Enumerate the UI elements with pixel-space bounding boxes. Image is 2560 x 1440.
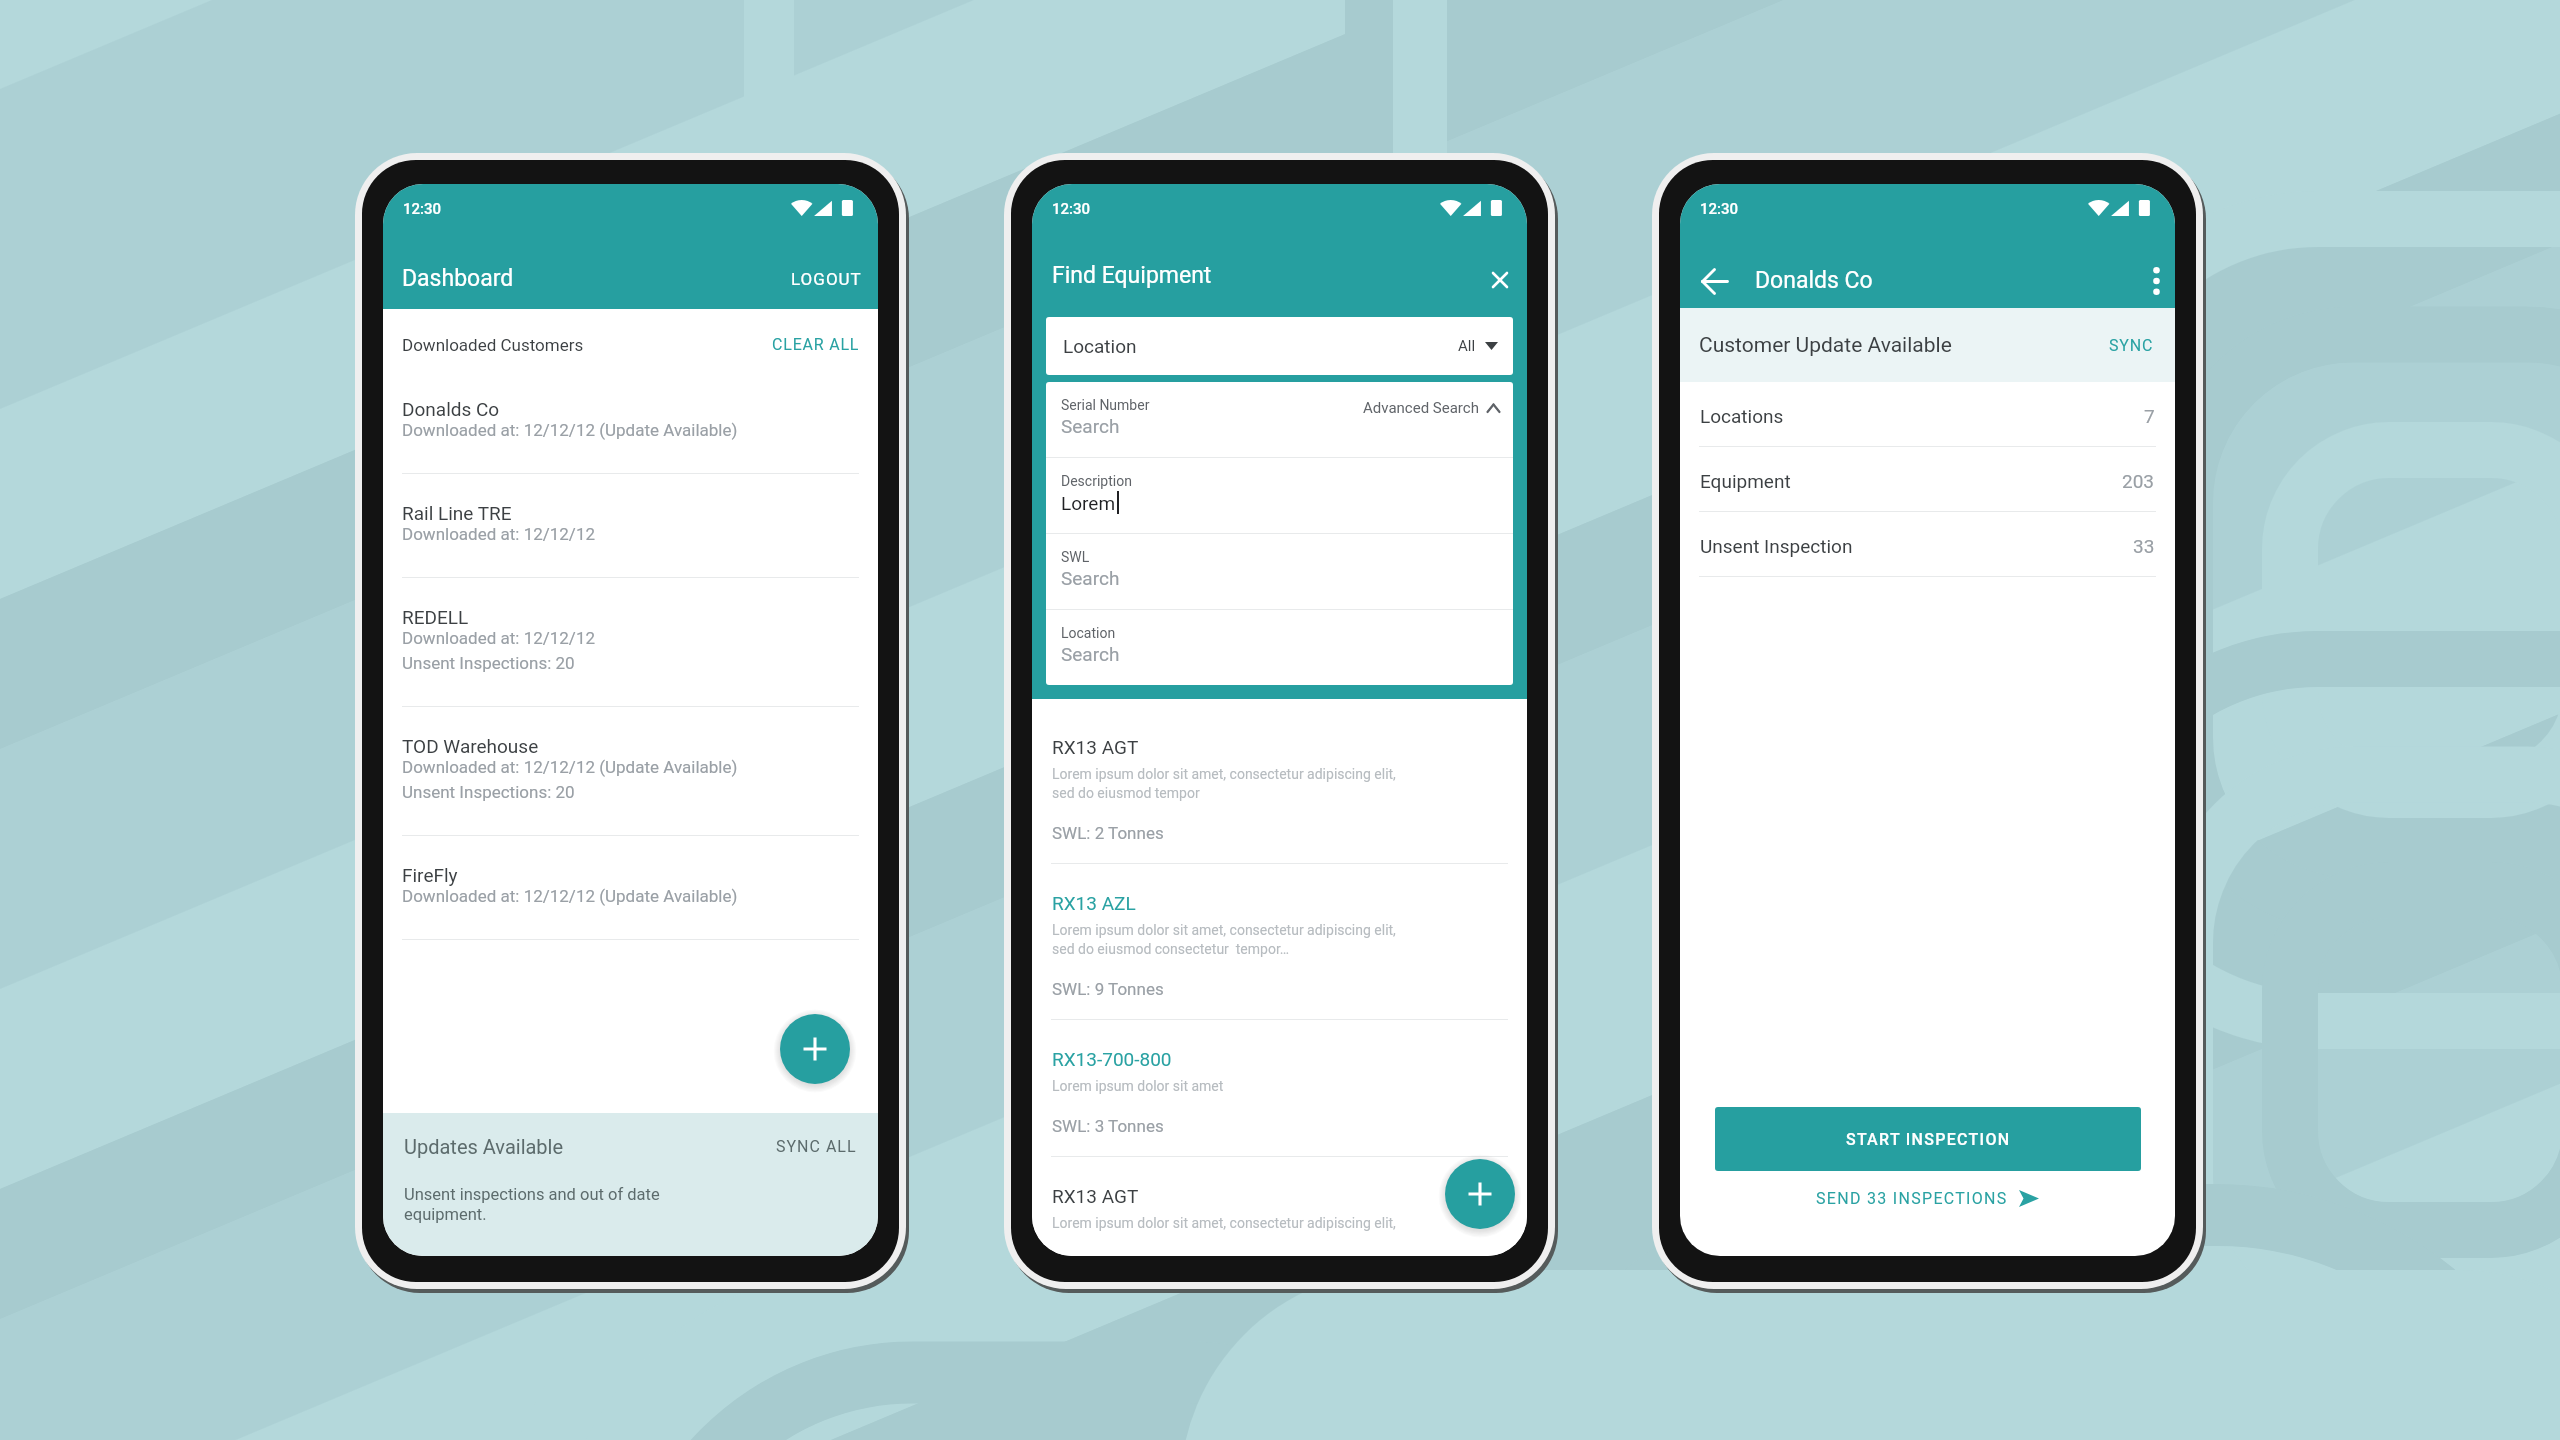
button[interactable]: Location bbox=[1046, 610, 1513, 685]
staticText: Unsent Inspection bbox=[1700, 535, 1853, 557]
staticText: SWL: 2 Tonnes bbox=[1052, 823, 1164, 843]
staticText: Equipment bbox=[1700, 470, 1791, 492]
staticText: Downloaded at: 12/12/12 (Update Availabl… bbox=[402, 757, 738, 802]
staticText: 203 bbox=[2122, 470, 2155, 492]
staticText: Search bbox=[1061, 415, 1120, 437]
button[interactable]: FireFly bbox=[383, 836, 878, 940]
staticText: Updates Available bbox=[404, 1135, 564, 1158]
staticText: 12:30 bbox=[1052, 200, 1091, 218]
staticText: Downloaded at: 12/12/12 (Update Availabl… bbox=[402, 886, 738, 906]
staticText: SWL: 9 Tonnes bbox=[1052, 979, 1164, 999]
button[interactable]: REDELL bbox=[383, 578, 878, 707]
staticText: RX13-700-800 bbox=[1052, 1048, 1172, 1070]
button[interactable]: Add equipment bbox=[1445, 1159, 1515, 1229]
button[interactable]: Locations bbox=[1680, 382, 2175, 447]
staticText: Customer Update Available bbox=[1699, 333, 1952, 358]
button[interactable]: TOD Warehouse bbox=[383, 707, 878, 836]
staticText: Lorem ipsum dolor sit amet, consectetur … bbox=[1052, 922, 1396, 957]
staticText: SYNC ALL bbox=[776, 1137, 857, 1156]
staticText: LOGOUT bbox=[791, 269, 862, 289]
staticText: CLEAR ALL bbox=[772, 335, 860, 354]
staticText: 12:30 bbox=[403, 200, 442, 218]
button[interactable]: CLEAR ALL bbox=[772, 335, 860, 354]
staticText: Lorem ipsum dolor sit amet bbox=[1052, 1078, 1224, 1094]
button[interactable]: Serial Number bbox=[1046, 382, 1513, 457]
staticText: 7 bbox=[2144, 405, 2155, 427]
button[interactable]: RX13 AGT bbox=[1032, 708, 1527, 864]
staticText: Lorem ipsum dolor sit amet, consectetur … bbox=[1052, 766, 1396, 801]
button[interactable]: SWL bbox=[1046, 534, 1513, 609]
button[interactable]: Add customer bbox=[780, 1014, 850, 1084]
staticText: Downloaded at: 12/12/12 (Update Availabl… bbox=[402, 420, 738, 440]
staticText: Location bbox=[1063, 335, 1137, 357]
staticText: Advanced Search bbox=[1363, 399, 1479, 417]
staticText: Donalds Co bbox=[402, 398, 500, 420]
staticText: 12:30 bbox=[1700, 200, 1739, 218]
staticText: Search bbox=[1061, 643, 1120, 665]
button[interactable]: START INSPECTION bbox=[1715, 1107, 2141, 1171]
staticText: Serial Number bbox=[1061, 397, 1150, 413]
staticText: Description bbox=[1061, 473, 1132, 489]
staticText: Rail Line TRE bbox=[402, 502, 512, 524]
button[interactable]: Donalds Co bbox=[383, 370, 878, 474]
staticText: START INSPECTION bbox=[1846, 1130, 2011, 1149]
staticText: FireFly bbox=[402, 864, 458, 886]
button[interactable]: More options bbox=[2141, 266, 2171, 296]
button[interactable]: Customer Update Available bbox=[1680, 308, 2175, 382]
staticText: Location bbox=[1061, 625, 1116, 641]
staticText: SWL bbox=[1061, 549, 1090, 565]
button[interactable]: RX13 AZL bbox=[1032, 864, 1527, 1020]
button[interactable]: RX13 AGT bbox=[1032, 1157, 1527, 1256]
staticText: Downloaded at: 12/12/12 bbox=[402, 524, 595, 544]
staticText: Locations bbox=[1700, 405, 1784, 427]
staticText: Downloaded Customers bbox=[402, 335, 584, 355]
staticText: REDELL bbox=[402, 606, 469, 628]
staticText: Unsent inspections and out of date equip… bbox=[404, 1185, 660, 1224]
staticText: 33 bbox=[2133, 535, 2155, 557]
staticText: Search bbox=[1061, 567, 1120, 589]
staticText: RX13 AGT bbox=[1052, 1185, 1139, 1207]
button[interactable]: Equipment bbox=[1680, 447, 2175, 512]
staticText: SYNC bbox=[2109, 336, 2154, 355]
staticText: SEND 33 INSPECTIONS bbox=[1816, 1189, 2008, 1208]
staticText: Lorem ipsum dolor sit amet, consectetur … bbox=[1052, 1215, 1396, 1236]
button[interactable]: Rail Line TRE bbox=[383, 474, 878, 578]
button[interactable]: Unsent Inspection bbox=[1680, 512, 2175, 577]
staticText: Dashboard bbox=[402, 265, 514, 292]
staticText: RX13 AGT bbox=[1052, 736, 1139, 758]
staticText: SWL: 3 Tonnes bbox=[1052, 1116, 1164, 1136]
staticText: Find Equipment bbox=[1052, 262, 1212, 289]
staticText: Lorem bbox=[1061, 492, 1116, 514]
button[interactable]: RX13-700-800 bbox=[1032, 1020, 1527, 1157]
staticText: RX13 AZL bbox=[1052, 892, 1136, 914]
button[interactable]: SEND 33 INSPECTIONS bbox=[1680, 1171, 2175, 1225]
staticText: TOD Warehouse bbox=[402, 735, 539, 757]
staticText: Donalds Co bbox=[1755, 267, 1873, 294]
button[interactable]: SYNC ALL bbox=[776, 1135, 857, 1156]
button[interactable]: Back bbox=[1697, 264, 1731, 298]
button[interactable]: Description bbox=[1046, 458, 1513, 533]
staticText: All bbox=[1458, 337, 1476, 355]
staticText: Downloaded at: 12/12/12 Unsent Inspectio… bbox=[402, 628, 595, 673]
button[interactable]: Close bbox=[1486, 266, 1514, 294]
button[interactable]: Location bbox=[1046, 317, 1513, 375]
button[interactable]: LOGOUT bbox=[791, 265, 862, 289]
